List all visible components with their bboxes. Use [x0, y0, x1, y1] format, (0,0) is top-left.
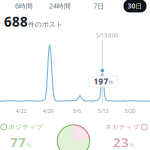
staticText: 7日 [93, 2, 104, 10]
staticText: 24時間 [49, 2, 71, 10]
staticText: 4/29 [42, 107, 53, 115]
staticText: 688 [4, 13, 28, 30]
button[interactable]: 7日 [89, 0, 108, 12]
staticText: 件 [108, 80, 113, 86]
button[interactable]: 6時間 [11, 0, 37, 12]
staticText: 5/20 [124, 107, 135, 115]
staticText: 197 [93, 76, 108, 87]
staticText: ポジティブ [8, 123, 43, 131]
staticText: 6時間 [15, 2, 33, 10]
staticText: 4/22 [15, 107, 26, 115]
staticText: 5/13 [97, 107, 108, 115]
staticText: 30日 [127, 2, 142, 10]
staticText: 5/13 0:00 [96, 32, 118, 39]
staticText: % [26, 140, 32, 149]
button[interactable]: 24時間 [45, 0, 75, 12]
staticText: 5/6 [73, 107, 81, 115]
staticText: % [129, 140, 135, 149]
staticText: 77 [10, 133, 26, 150]
staticText: ネガティブ [105, 123, 140, 131]
button[interactable]: 30日 [123, 0, 146, 12]
staticText: 23 [113, 133, 129, 150]
staticText: 件のポスト [28, 20, 63, 29]
